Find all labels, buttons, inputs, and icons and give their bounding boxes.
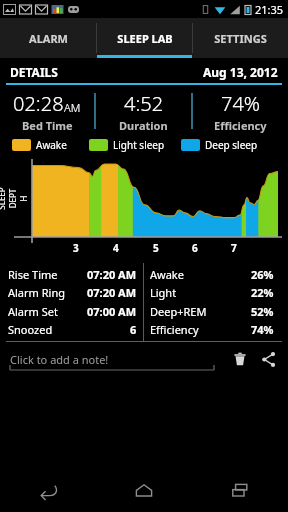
button[interactable]: SETTINGS <box>193 18 288 58</box>
staticText: Alarm Ring <box>8 285 65 300</box>
staticText: 4:52 <box>124 90 164 117</box>
staticText: Efficiency <box>150 322 199 337</box>
button[interactable]: Back <box>0 468 96 512</box>
staticText: 5 <box>153 241 159 255</box>
staticText: DETAILS <box>10 64 58 80</box>
staticText: SETTINGS <box>214 31 267 46</box>
staticText: Deep sleep <box>205 138 258 152</box>
staticText: 07:00 AM <box>87 304 137 319</box>
staticText: 26% <box>251 267 274 282</box>
staticText: Efficiency <box>214 118 267 133</box>
staticText: 7 <box>231 241 237 255</box>
staticText: 02:28 <box>13 90 64 117</box>
button[interactable]: ALARM <box>0 18 96 58</box>
staticText: 07:20 AM <box>87 267 137 282</box>
staticText: AM <box>64 100 81 115</box>
button[interactable]: SLEEP LAB <box>97 18 192 58</box>
staticText: 4 <box>113 241 119 255</box>
staticText: 6 <box>192 241 198 255</box>
button[interactable]: Click to add a note! <box>10 347 218 371</box>
staticText: SLEEP LAB <box>117 31 173 46</box>
staticText: Deep+REM <box>150 304 207 319</box>
button[interactable]: Delete <box>228 347 252 371</box>
staticText: SLEEP DEPTH <box>0 186 28 210</box>
staticText: Awake <box>150 267 184 282</box>
button[interactable]: 02:28 <box>0 89 94 133</box>
button[interactable]: 4:52 <box>96 89 191 133</box>
staticText: Snoozed <box>8 322 53 337</box>
button[interactable]: Share <box>256 347 280 371</box>
staticText: Bed Time <box>22 118 73 133</box>
staticText: 07:20 AM <box>87 285 137 300</box>
staticText: Awake <box>36 138 67 152</box>
staticText: Click to add a note! <box>10 352 109 367</box>
staticText: Duration <box>119 118 168 133</box>
staticText: 22% <box>251 285 274 300</box>
staticText: 3 <box>73 241 79 255</box>
staticText: Alarm Set <box>8 304 58 319</box>
staticText: 21:35 <box>255 2 284 17</box>
button[interactable]: 74% <box>193 89 288 133</box>
staticText: Light <box>150 285 177 300</box>
staticText: 74% <box>251 322 274 337</box>
button[interactable]: Recent apps <box>192 468 288 512</box>
button[interactable]: Home <box>96 468 192 512</box>
staticText: Aug 13, 2012 <box>203 64 278 80</box>
staticText: Rise Time <box>8 267 58 282</box>
staticText: Light sleep <box>113 138 165 152</box>
staticText: ALARM <box>29 31 68 46</box>
staticText: 6 <box>130 322 137 337</box>
staticText: 74% <box>221 90 261 117</box>
staticText: 52% <box>251 304 274 319</box>
